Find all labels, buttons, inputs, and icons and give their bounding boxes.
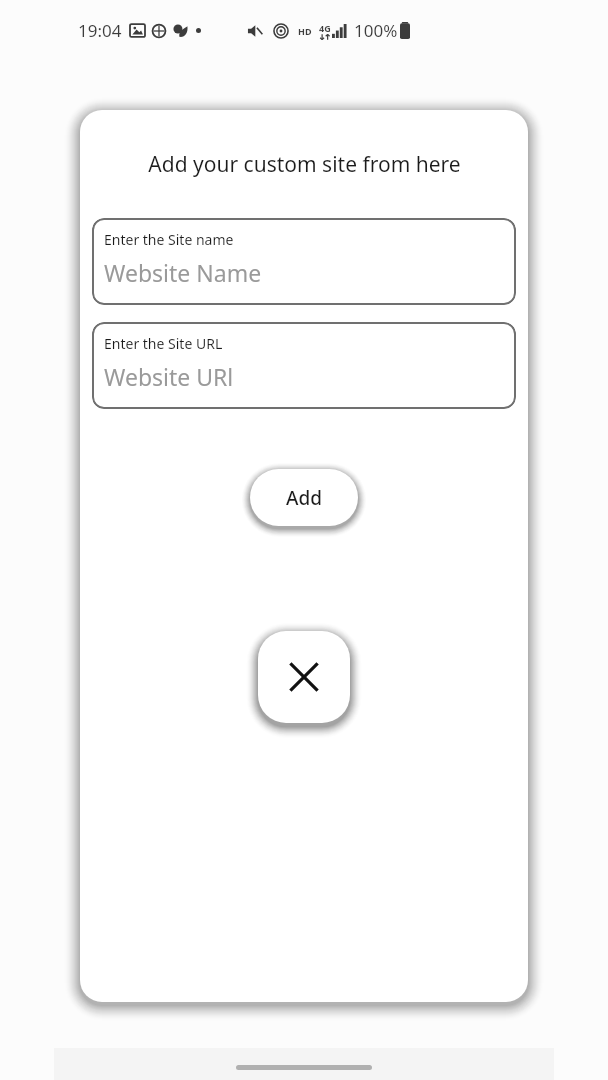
staticText: Add your custom site from here [148,150,461,179]
button[interactable]: Enter the Site URL [92,322,516,409]
staticText: HD [298,25,312,37]
button[interactable]: Close [258,631,350,723]
staticText: 100% [354,19,398,42]
button[interactable]: Enter the Site name [92,218,516,305]
staticText: 19:04 [78,19,122,42]
button[interactable]: Add [250,469,358,526]
staticText: Enter the Site name [104,230,234,249]
staticText: Enter the Site URL [104,334,223,353]
staticText: 4G [319,22,331,34]
staticText: Website URl [104,361,234,392]
staticText: Add [286,485,323,511]
staticText: Website Name [104,257,262,288]
